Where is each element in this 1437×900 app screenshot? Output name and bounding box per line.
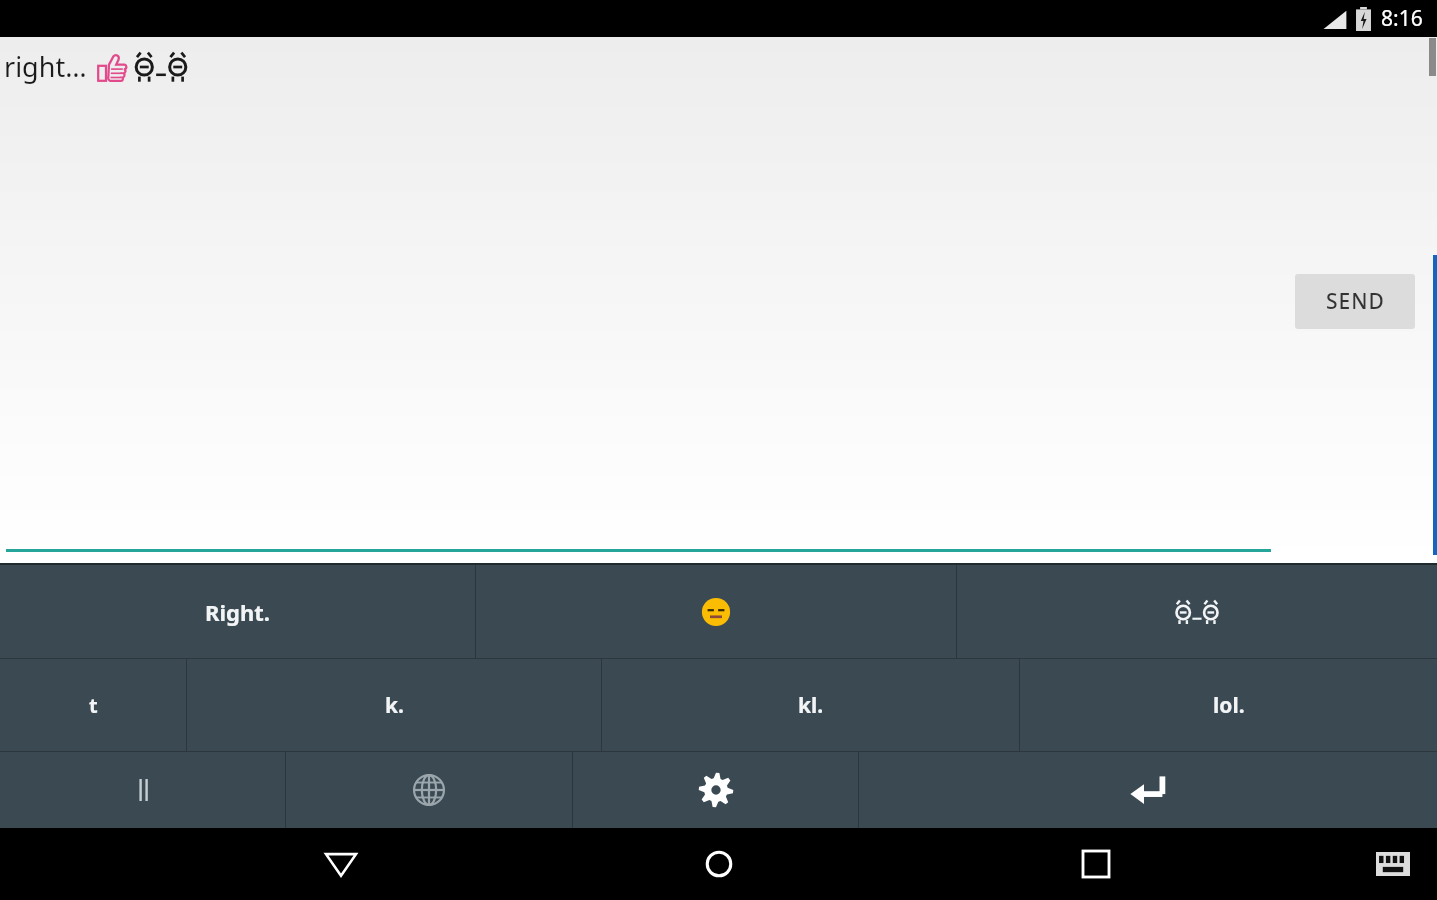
staticText: k. bbox=[385, 691, 404, 720]
button[interactable]: Show keyboard bbox=[1371, 842, 1415, 886]
staticText: right… bbox=[4, 48, 87, 85]
button[interactable]: Settings bbox=[573, 752, 858, 828]
button[interactable]: Recent apps bbox=[1060, 828, 1132, 900]
staticText: kl. bbox=[798, 691, 824, 720]
button[interactable]: Text mode bbox=[0, 752, 285, 828]
button[interactable] bbox=[957, 565, 1437, 658]
button[interactable]: Expressionless emoji suggestion bbox=[476, 565, 956, 658]
button[interactable]: Enter bbox=[859, 752, 1437, 828]
button[interactable]: SEND bbox=[1295, 274, 1415, 329]
button[interactable]: lol. bbox=[1020, 659, 1437, 751]
staticText: t bbox=[89, 692, 98, 719]
button[interactable]: t bbox=[0, 659, 186, 751]
button[interactable]: Change language bbox=[286, 752, 572, 828]
staticText: lol. bbox=[1213, 691, 1245, 720]
button[interactable]: k. bbox=[187, 659, 601, 751]
button[interactable]: kl. bbox=[602, 659, 1019, 751]
button[interactable]: Home bbox=[683, 828, 755, 900]
staticText: 8:16 bbox=[1381, 4, 1423, 33]
staticText: Right. bbox=[205, 597, 270, 627]
button[interactable]: Back bbox=[305, 828, 377, 900]
staticText: SEND bbox=[1326, 287, 1385, 316]
button[interactable]: Right. bbox=[0, 565, 475, 658]
